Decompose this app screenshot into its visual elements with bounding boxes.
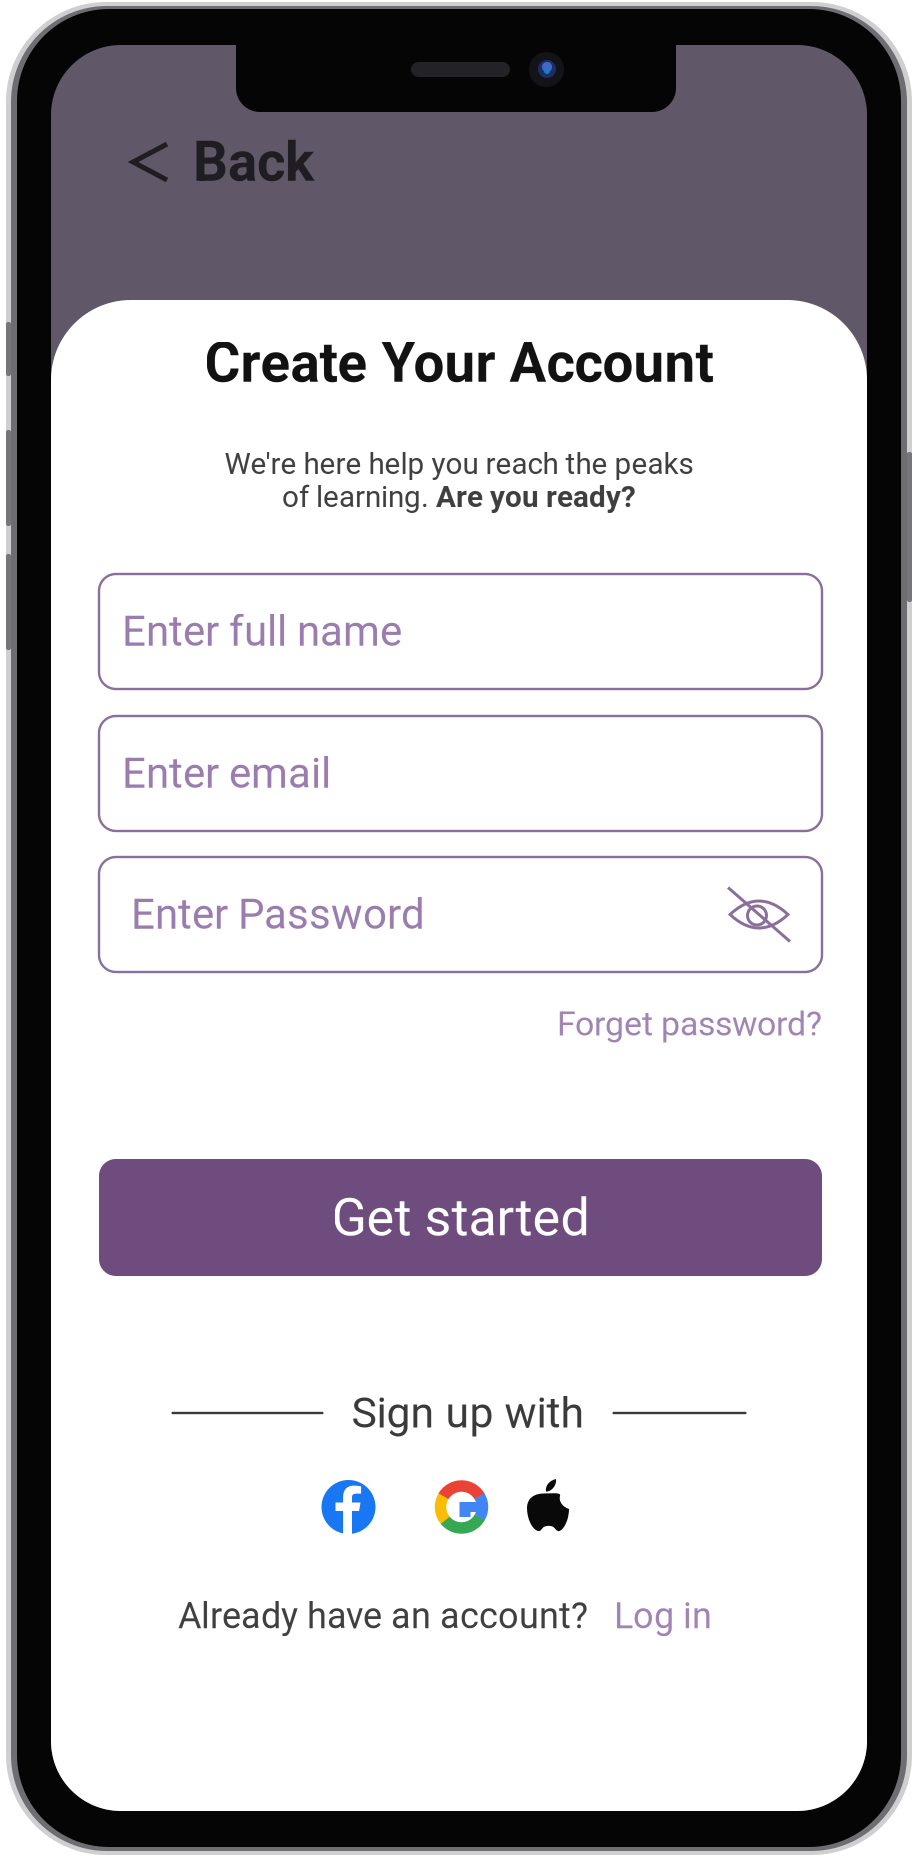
staticText: Enter Password [131,890,425,939]
button[interactable]: Log in [614,1595,712,1637]
staticText: Sign up with [351,1388,584,1438]
staticText: Create Your Account [204,331,713,395]
button[interactable]: Enter full name [99,574,822,689]
staticText: Forget password? [557,1004,822,1044]
staticText: Are you ready? [436,480,636,514]
staticText: We're here help you reach the peaks [224,447,693,481]
button[interactable]: Enter Password [99,857,822,972]
button[interactable]: Back [119,120,324,204]
button[interactable]: Sign up with Apple [522,1478,574,1536]
staticText: Back [193,130,314,194]
button[interactable]: Forget password? [502,1002,822,1046]
staticText: of learning. [282,480,436,514]
button[interactable]: Sign up with Google [434,1480,488,1534]
staticText: Already have an account? [178,1595,588,1637]
staticText: Enter email [122,749,331,798]
staticText: Get started [331,1187,589,1248]
button[interactable]: Enter email [99,716,822,831]
staticText: Log in [614,1595,712,1637]
staticText: Enter full name [122,607,402,656]
button[interactable]: Sign up with Facebook [321,1480,375,1534]
button[interactable]: Get started [99,1159,822,1276]
